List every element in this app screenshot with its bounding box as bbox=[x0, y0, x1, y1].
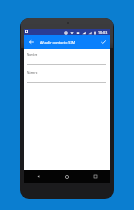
staticText: Añadir contacto SIM bbox=[40, 40, 75, 45]
staticText: Nombre bbox=[27, 53, 38, 57]
staticText: 10:03 bbox=[98, 30, 108, 35]
button[interactable]: Back bbox=[33, 171, 44, 182]
button[interactable]: Número bbox=[24, 65, 110, 83]
button[interactable]: Home bbox=[61, 171, 72, 182]
button[interactable]: Back bbox=[25, 35, 38, 49]
button[interactable]: Recent apps bbox=[90, 171, 101, 182]
button[interactable]: Nombre bbox=[24, 49, 110, 65]
staticText: Número bbox=[27, 71, 38, 75]
button[interactable]: Save bbox=[97, 35, 110, 49]
